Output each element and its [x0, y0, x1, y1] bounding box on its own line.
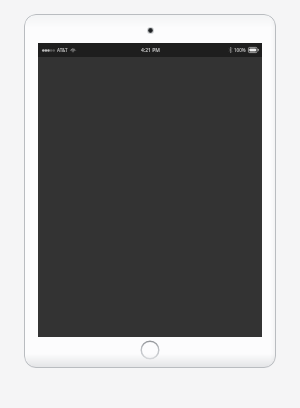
button[interactable]: Home: [140, 340, 160, 360]
staticText: AT&T: [57, 47, 68, 53]
button[interactable]: Battery 100 percent: [229, 47, 259, 53]
button[interactable]: Signal and carrier: [41, 47, 77, 53]
staticText: 100%: [234, 47, 246, 53]
staticText: 4:21 PM: [141, 47, 160, 54]
